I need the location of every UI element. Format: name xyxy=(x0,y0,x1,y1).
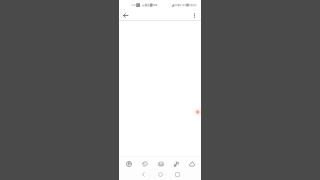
button[interactable]: More options xyxy=(189,10,200,21)
button[interactable]: Home xyxy=(156,170,165,179)
button[interactable]: Sounds xyxy=(169,157,182,170)
button[interactable]: Back xyxy=(139,170,148,179)
button[interactable]: Recent apps xyxy=(173,170,182,179)
button[interactable]: Recently used xyxy=(122,157,135,170)
button[interactable]: Navigate up xyxy=(120,10,131,21)
button[interactable]: Stickers xyxy=(138,157,151,170)
button[interactable]: GIFs xyxy=(185,157,198,170)
button[interactable]: Emoji xyxy=(154,157,167,170)
